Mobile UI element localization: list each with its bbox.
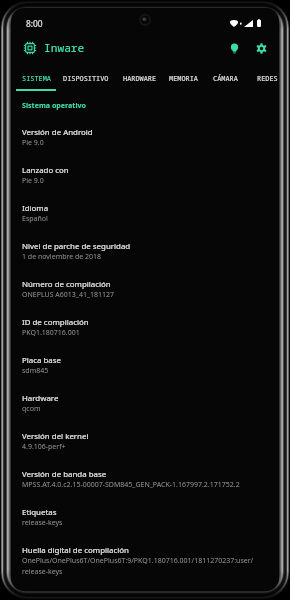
staticText: 8:00 [26, 18, 43, 29]
button[interactable]: Idioma [22, 203, 269, 241]
button[interactable]: Hardware [22, 393, 269, 431]
button[interactable]: ID de compilación [22, 317, 269, 355]
button[interactable]: SISTEMA [16, 62, 57, 91]
button[interactable]: DISPOSITIVO [57, 62, 115, 91]
button[interactable]: REDES [251, 62, 279, 91]
staticText: SISTEMA [22, 74, 51, 83]
button[interactable]: Lanzado con [22, 165, 269, 203]
staticText: Número de compilación [22, 279, 111, 290]
button[interactable]: Huella digital de compilación [22, 545, 269, 583]
staticText: Idioma [22, 203, 49, 214]
button[interactable]: Versión del kernel [22, 431, 269, 469]
button[interactable]: Settings [249, 36, 273, 60]
staticText: CÁMARA [213, 74, 238, 83]
button[interactable]: Versión de banda base [22, 469, 269, 507]
button[interactable]: Placa base [22, 355, 269, 393]
staticText: ID de compilación [22, 317, 89, 328]
staticText: Hardware [22, 393, 59, 404]
staticText: ONEPLUS A6013_41_181127 [22, 290, 115, 300]
staticText: Etiquetas [22, 507, 57, 518]
staticText: 1 de noviembre de 2018 [22, 252, 102, 262]
staticText: PKQ1.180716.001 [22, 328, 80, 338]
button[interactable]: CÁMARA [207, 62, 244, 91]
staticText: release-keys [22, 518, 63, 528]
button[interactable]: Nivel de parche de seguridad [22, 241, 269, 279]
button[interactable]: Versión de Android [22, 127, 269, 165]
staticText: Pie 9.0 [22, 138, 44, 148]
staticText: Placa base [22, 355, 62, 366]
staticText: REDES [257, 74, 278, 83]
staticText: 4.9.106-perf+ [22, 442, 66, 452]
staticText: Nivel de parche de seguridad [22, 241, 131, 252]
staticText: MPSS.AT.4.0.c2.15-00007-SDM845_GEN_PACK-… [22, 480, 240, 490]
staticText: Versión del kernel [22, 431, 89, 442]
staticText: Pie 9.0 [22, 176, 44, 186]
staticText: HARDWARE [123, 74, 157, 83]
staticText: OnePlus/OnePlus6T/OnePlus6T:9/PKQ1.18071… [22, 556, 269, 576]
staticText: sdm845 [22, 366, 49, 376]
staticText: Español [22, 214, 48, 224]
staticText: Inware [44, 40, 85, 55]
staticText: DISPOSITIVO [63, 74, 109, 83]
staticText: qcom [22, 404, 41, 414]
button[interactable]: Número de compilación [22, 279, 269, 317]
staticText: Lanzado con [22, 165, 69, 176]
button[interactable]: Theme [222, 36, 246, 60]
staticText: Versión de banda base [22, 469, 107, 480]
staticText: MEMORIA [169, 74, 198, 83]
staticText: Sistema operativo [22, 100, 87, 110]
button[interactable]: Etiquetas [22, 507, 269, 545]
button[interactable]: HARDWARE [117, 62, 163, 91]
button[interactable]: MEMORIA [163, 62, 204, 91]
staticText: Versión de Android [22, 127, 93, 138]
staticText: Huella digital de compilación [22, 545, 129, 556]
